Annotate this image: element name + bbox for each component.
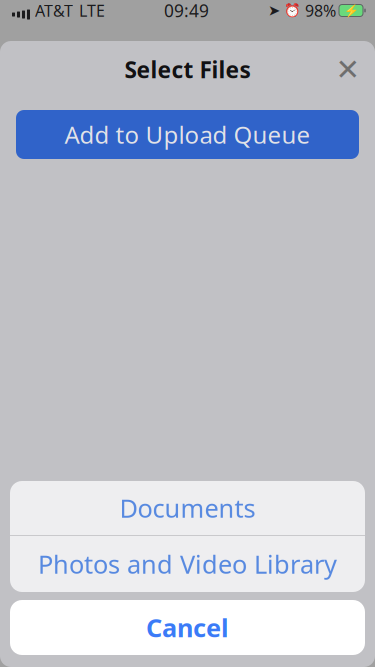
staticText: Select Files [124, 54, 250, 84]
button[interactable]: Close [326, 47, 370, 91]
staticText: AT&T [35, 0, 73, 21]
button[interactable]: Cancel [10, 600, 365, 655]
staticText: ⏰ [284, 3, 301, 18]
staticText: ⚡ [343, 4, 358, 17]
staticText: ➤ [268, 2, 280, 19]
staticText: Documents [119, 491, 255, 525]
staticText: 09:49 [164, 0, 209, 22]
staticText: Add to Upload Queue [64, 119, 310, 150]
button[interactable]: Add to Upload Queue [16, 110, 359, 159]
staticText: 98% [305, 0, 336, 21]
staticText: LTE [79, 0, 105, 21]
staticText: Photos and Video Library [38, 547, 337, 581]
staticText: Cancel [146, 611, 229, 644]
staticText: ✕ [335, 53, 360, 86]
button[interactable]: Documents [10, 481, 365, 535]
button[interactable]: Photos and Video Library [10, 536, 365, 592]
